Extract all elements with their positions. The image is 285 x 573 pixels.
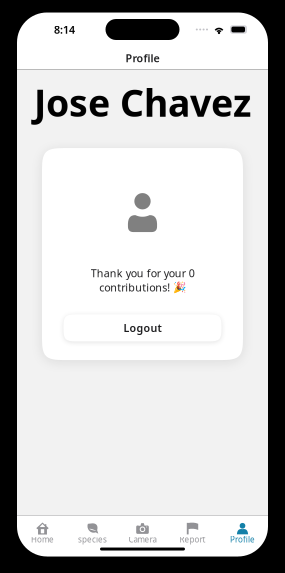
- staticText: 8:14: [54, 22, 75, 37]
- button[interactable]: Profile: [217, 521, 267, 545]
- staticText: Jose Chavez: [34, 77, 251, 127]
- staticText: species: [78, 534, 107, 545]
- staticText: Thank you for your 0 contributions! 🎉: [90, 266, 194, 294]
- staticText: Report: [179, 534, 205, 545]
- staticText: Camera: [128, 534, 156, 545]
- button[interactable]: Profile: [17, 46, 268, 69]
- button[interactable]: species: [67, 521, 117, 545]
- button[interactable]: Home: [17, 521, 67, 545]
- button[interactable]: Report: [167, 521, 217, 545]
- staticText: Logout: [123, 321, 161, 335]
- button[interactable]: Camera: [117, 521, 167, 545]
- button[interactable]: Logout: [63, 314, 221, 341]
- staticText: Home: [31, 534, 54, 545]
- staticText: Profile: [125, 51, 159, 65]
- staticText: Profile: [230, 534, 255, 545]
